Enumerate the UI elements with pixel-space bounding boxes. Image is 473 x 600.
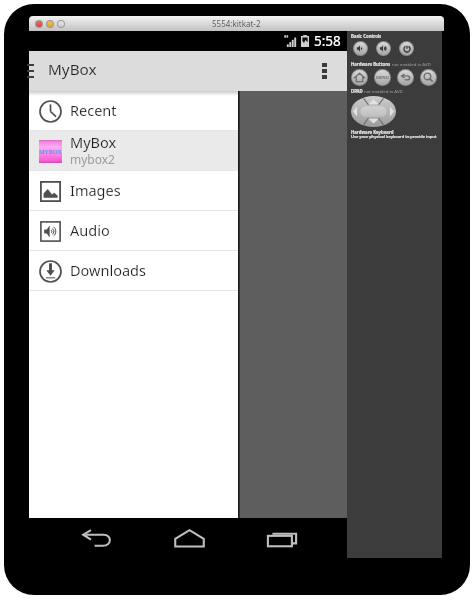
- button[interactable]: Back: [77, 521, 117, 555]
- staticText: Basic Controls: [351, 33, 382, 39]
- staticText: MyBox: [70, 132, 117, 152]
- staticText: 5:58: [314, 32, 341, 50]
- staticText: 5554:kitkat-2: [212, 18, 261, 29]
- button[interactable]: Recent: [29, 91, 238, 130]
- staticText: Audio: [70, 220, 110, 240]
- button[interactable]: Audio: [29, 211, 238, 250]
- staticText: MENU: [376, 75, 389, 81]
- button[interactable]: Images: [29, 171, 238, 210]
- button[interactable]: Open navigation drawer: [13, 54, 47, 88]
- staticText: Recent: [70, 100, 117, 120]
- button[interactable]: More options: [308, 54, 340, 88]
- button[interactable]: Power: [400, 42, 413, 55]
- staticText: MYBOX: [39, 148, 62, 156]
- staticText: not enabled in AVD: [391, 61, 431, 67]
- button[interactable]: Search: [421, 70, 436, 85]
- button[interactable]: MYBOX: [29, 131, 238, 170]
- button[interactable]: Volume down: [354, 42, 367, 55]
- button[interactable]: Downloads: [29, 251, 238, 290]
- staticText: not enabled in AVD: [363, 88, 403, 94]
- staticText: Hardware Buttons: [351, 61, 391, 67]
- staticText: Hardware Keyboard: [351, 129, 394, 135]
- button[interactable]: Back: [398, 70, 413, 85]
- button[interactable]: Home: [352, 70, 367, 85]
- staticText: DPAD: [351, 88, 363, 94]
- staticText: Use your physical keyboard to provide in…: [351, 134, 443, 139]
- staticText: MyBox: [48, 59, 97, 80]
- button[interactable]: Menu: [375, 70, 390, 85]
- button[interactable]: Recent apps: [262, 521, 302, 555]
- staticText: Images: [70, 180, 121, 200]
- staticText: mybox2: [70, 151, 115, 167]
- staticText: Downloads: [70, 260, 146, 280]
- button[interactable]: Volume up: [377, 42, 390, 55]
- button[interactable]: Home: [169, 521, 209, 555]
